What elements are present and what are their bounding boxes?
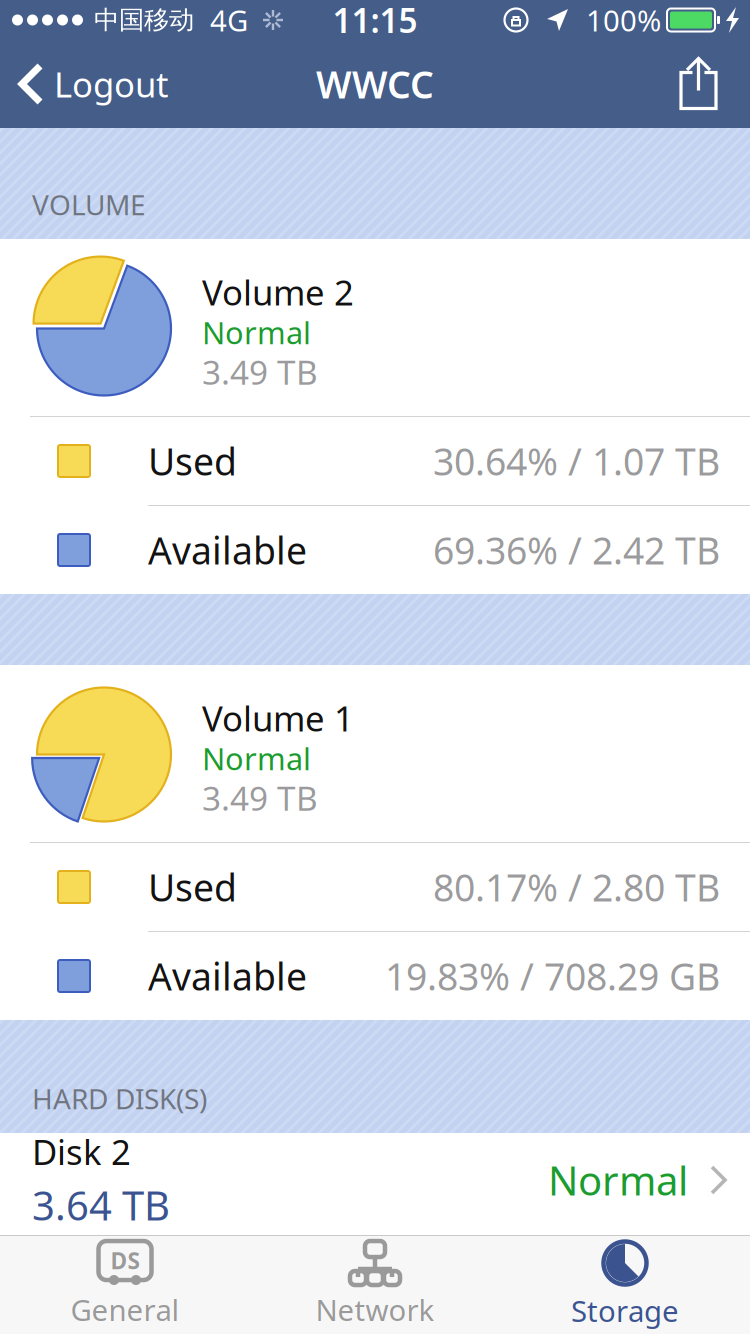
staticText: VOLUME [32,186,146,223]
button[interactable]: Used [0,843,750,931]
button[interactable]: DS [0,1236,250,1334]
staticText: Used [148,862,237,912]
staticText: Volume 2 [202,269,354,315]
staticText: Logout [54,61,169,107]
staticText: 4G [210,0,248,39]
staticText: Available [148,951,307,1001]
button[interactable]: Logout [0,40,183,128]
staticText: Available [148,525,307,575]
staticText: 11:15 [332,0,417,42]
staticText: 19.83% / 708.29 GB [385,951,720,1001]
button[interactable]: Storage [500,1236,750,1334]
staticText: 100% [586,0,661,39]
staticText: 3.64 TB [32,1178,170,1232]
staticText: WWCC [316,59,434,109]
button[interactable]: Disk 2 [0,1133,750,1227]
button[interactable]: Used [0,417,750,505]
staticText: Used [148,436,237,486]
staticText: Network [315,1290,434,1329]
button[interactable]: Available [0,932,750,1020]
staticText: Storage [571,1291,679,1330]
staticText: 69.36% / 2.42 TB [433,525,720,575]
staticText: DS [110,1245,139,1276]
staticText: 中国移动 [94,4,194,35]
staticText: 3.49 TB [202,350,318,394]
button[interactable]: Available [0,506,750,594]
button[interactable]: Share [657,40,750,128]
staticText: Normal [202,312,311,353]
staticText: Normal [202,738,311,779]
staticText: 80.17% / 2.80 TB [433,862,720,912]
staticText: Disk 2 [32,1128,131,1174]
staticText: 3.49 TB [202,776,318,820]
staticText: 30.64% / 1.07 TB [433,436,720,486]
staticText: Volume 1 [202,695,354,741]
staticText: HARD DISK(S) [32,1080,207,1117]
staticText: General [70,1290,179,1329]
button[interactable]: Volume 1 [0,665,750,842]
staticText: Normal [548,1153,688,1206]
button[interactable]: Network [250,1236,500,1334]
button[interactable]: Volume 2 [0,239,750,416]
